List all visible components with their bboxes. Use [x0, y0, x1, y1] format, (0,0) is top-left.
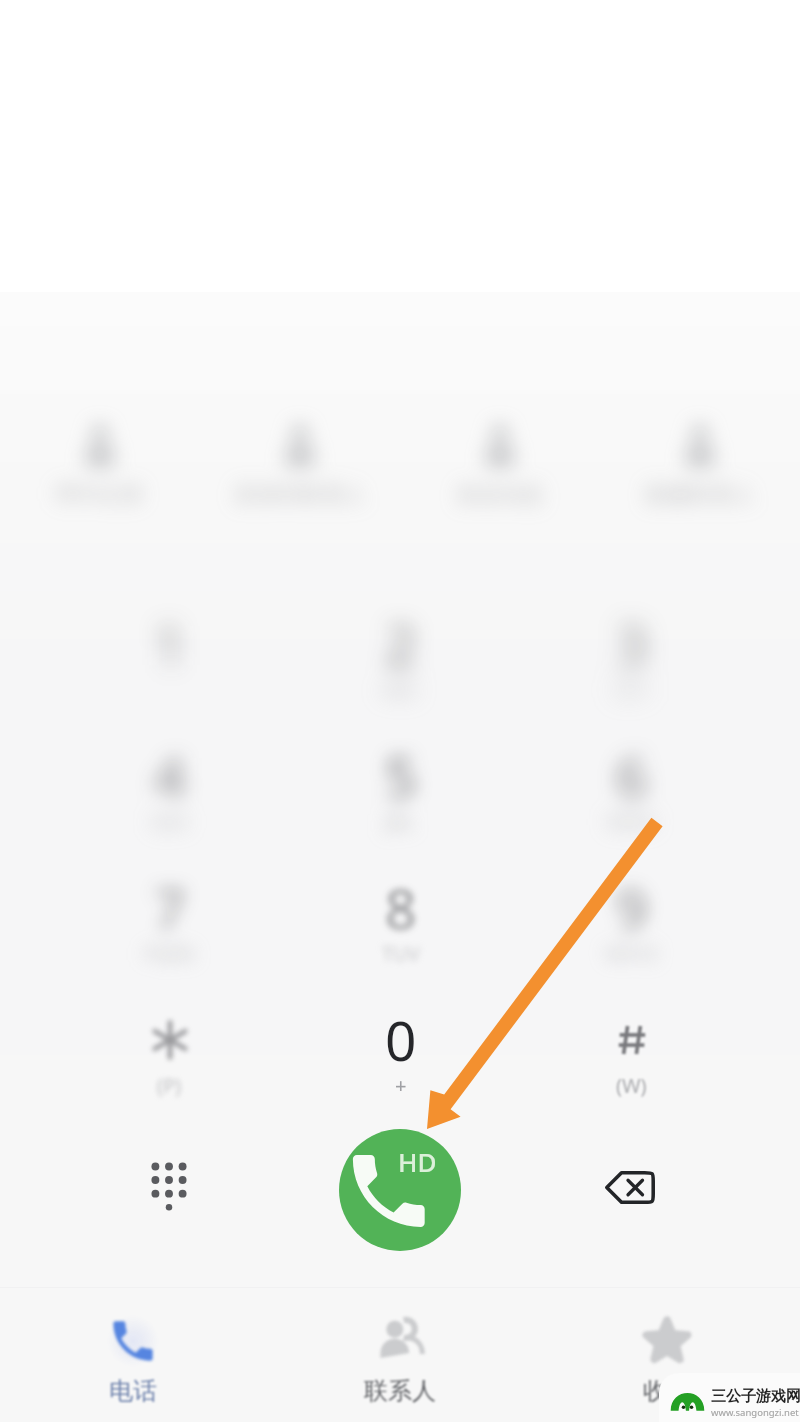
button[interactable]: 添加到联系人 [200, 396, 400, 509]
button[interactable]: (P) [54, 978, 285, 1102]
staticText: TUV [382, 940, 420, 967]
staticText: 新建联系人 [645, 481, 755, 509]
staticText: 6 [616, 738, 648, 813]
staticText: 三公子游戏网 [711, 1387, 800, 1406]
button[interactable]: 0 [285, 978, 516, 1102]
staticText: 7 [154, 870, 186, 945]
button[interactable]: 新建联系人 [600, 396, 800, 509]
button[interactable]: Hide keypad [113, 1133, 225, 1245]
button[interactable]: 3 [516, 582, 747, 706]
button[interactable]: (W) [516, 978, 747, 1102]
button[interactable]: 2 [285, 582, 516, 706]
staticText: 4 [154, 738, 186, 813]
staticText: www.sangongzi.net [711, 1406, 799, 1419]
staticText: 5 [385, 738, 417, 813]
button[interactable]: 收藏 [533, 1287, 800, 1422]
staticText: 0 [385, 1002, 417, 1077]
button[interactable]: Backspace [574, 1131, 686, 1243]
button[interactable]: 呼叫记录 [0, 396, 200, 509]
button[interactable]: 发送信息 [400, 396, 600, 509]
staticText: HD [398, 1144, 437, 1179]
button[interactable]: 4 [54, 714, 285, 838]
staticText: 2 [385, 606, 417, 681]
staticText: 1 [154, 606, 186, 681]
staticText: 电话 [109, 1376, 157, 1406]
staticText: + [395, 1072, 407, 1099]
staticText: 9 [616, 870, 648, 945]
button[interactable]: 6 [516, 714, 747, 838]
button[interactable]: Call [339, 1129, 461, 1251]
button[interactable]: 电话 [0, 1287, 266, 1422]
staticText: (P) [157, 1072, 182, 1099]
staticText: 3 [616, 606, 648, 681]
staticText: (W) [616, 1072, 647, 1099]
staticText: MNO [607, 808, 656, 835]
button[interactable]: 9 [516, 846, 747, 970]
staticText: 联系人 [364, 1376, 436, 1406]
button[interactable]: 5 [285, 714, 516, 838]
staticText: 8 [385, 870, 417, 945]
button[interactable]: 8 [285, 846, 516, 970]
button[interactable]: 联系人 [266, 1287, 533, 1422]
staticText: 收藏 [643, 1376, 691, 1406]
button[interactable]: 7 [54, 846, 285, 970]
